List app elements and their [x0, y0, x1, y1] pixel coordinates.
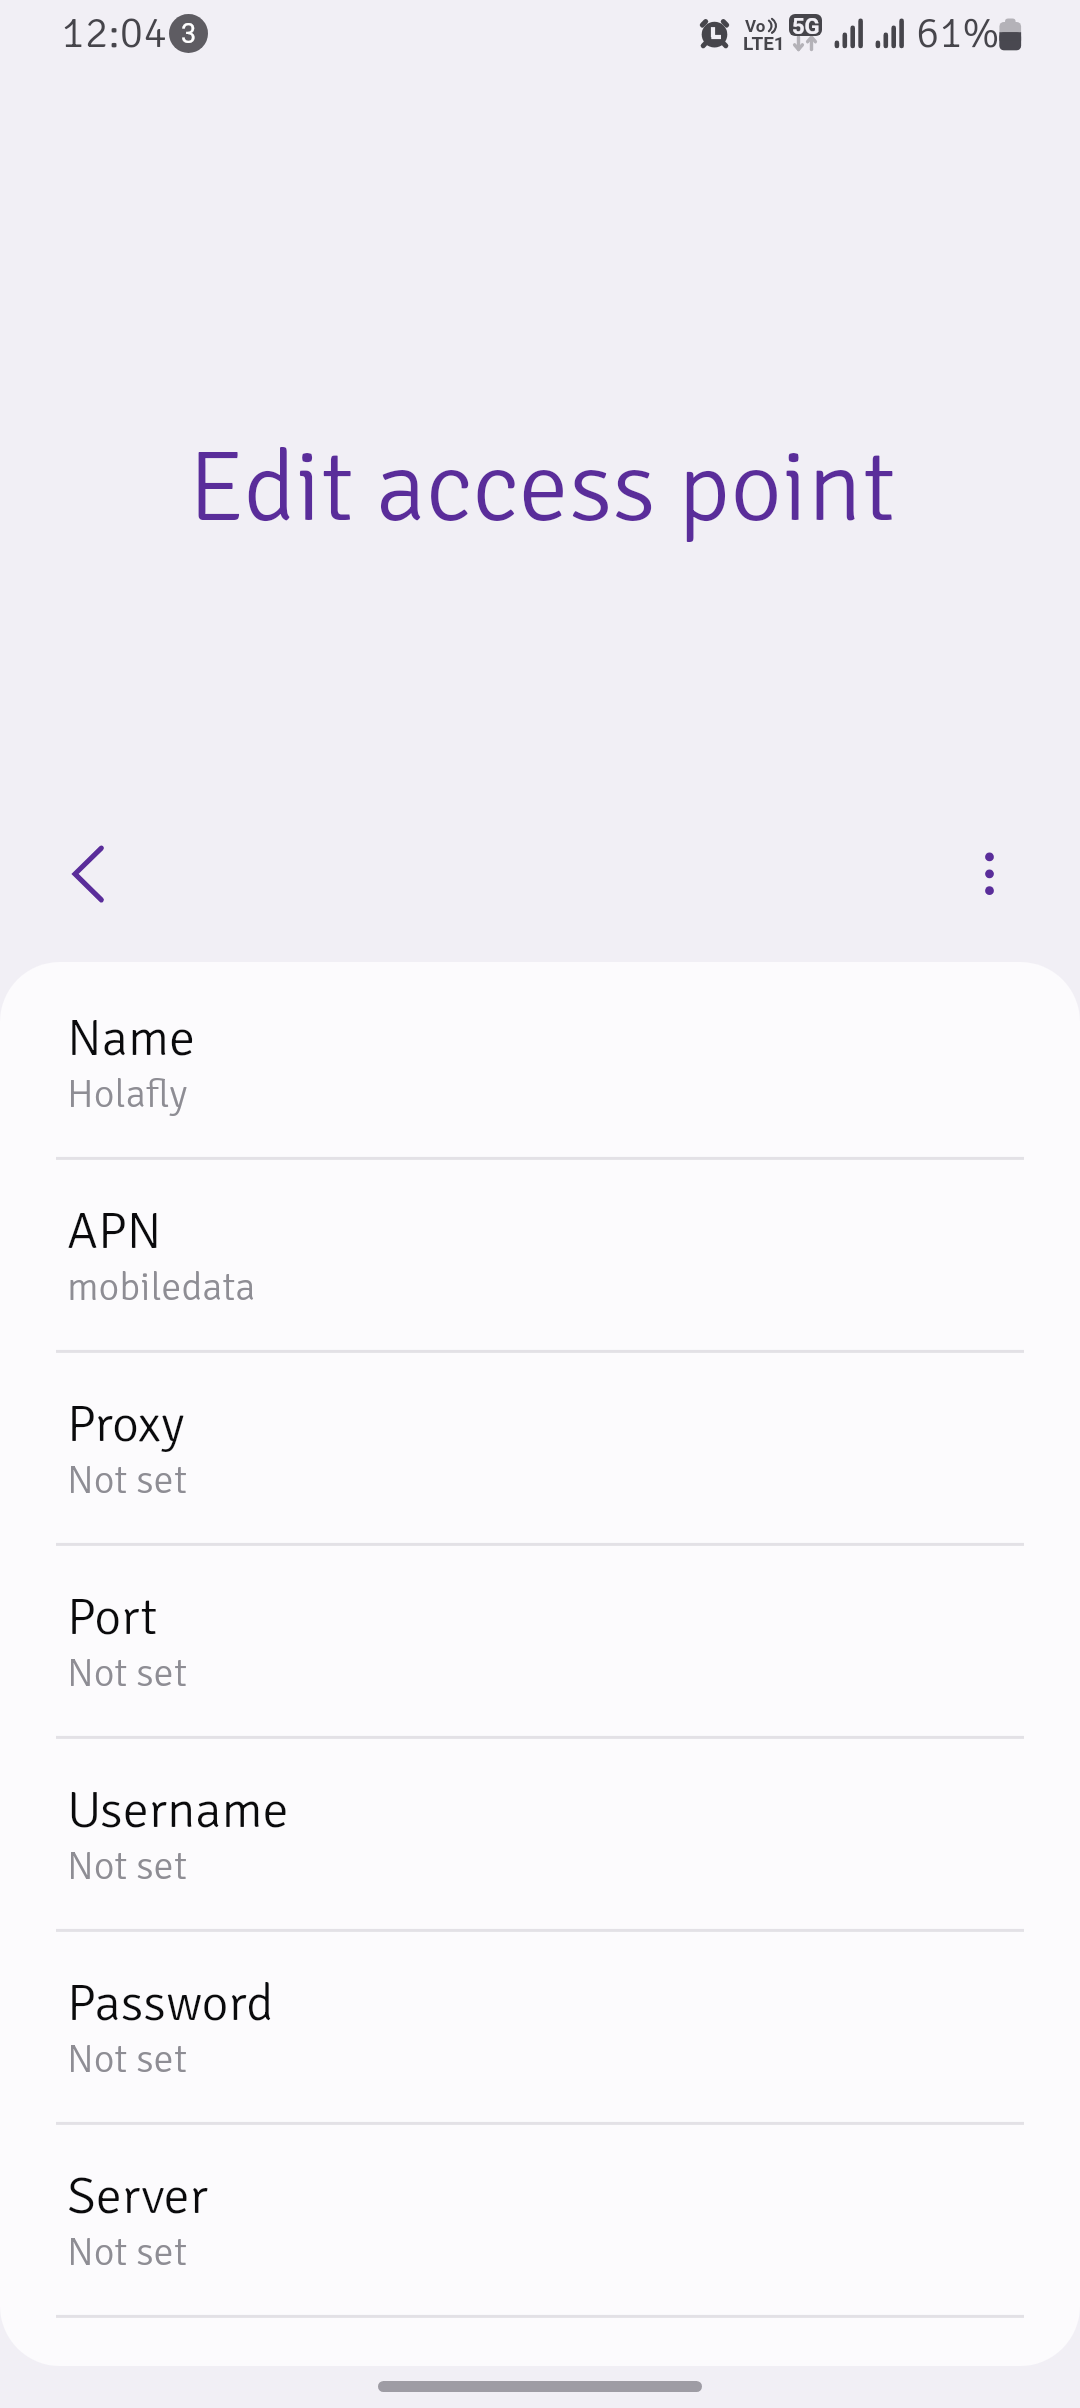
- staticText: 12:04: [61, 6, 168, 60]
- button[interactable]: More options: [932, 818, 1044, 930]
- button[interactable]: APN: [0, 1158, 1080, 1351]
- staticText: Not set: [67, 1455, 188, 1504]
- staticText: Username: [67, 1778, 289, 1842]
- button[interactable]: Username: [0, 1737, 1080, 1930]
- staticText: Proxy: [67, 1392, 185, 1456]
- staticText: Password: [67, 1971, 274, 2035]
- staticText: Not set: [67, 2227, 188, 2276]
- staticText: Holafly: [67, 1069, 188, 1118]
- button[interactable]: Password: [0, 1930, 1080, 2123]
- staticText: Server: [67, 2164, 208, 2228]
- staticText: 5G: [792, 14, 820, 36]
- button[interactable]: Navigate up: [32, 818, 144, 930]
- staticText: 3: [181, 18, 197, 50]
- staticText: Port: [67, 1585, 158, 1649]
- button[interactable]: Server: [0, 2123, 1080, 2316]
- staticText: Not set: [67, 2034, 188, 2083]
- button[interactable]: Name: [0, 965, 1080, 1158]
- staticText: Not set: [67, 1648, 188, 1697]
- staticText: mobiledata: [67, 1262, 256, 1311]
- staticText: 61%: [916, 7, 1000, 60]
- staticText: Name: [67, 1006, 196, 1070]
- staticText: LTE1: [743, 32, 785, 54]
- staticText: Vo: [745, 16, 766, 36]
- staticText: Not set: [67, 1841, 188, 1890]
- button[interactable]: Proxy: [0, 1351, 1080, 1544]
- staticText: Edit access point: [2, 426, 1080, 549]
- button[interactable]: Port: [0, 1544, 1080, 1737]
- staticText: APN: [67, 1199, 162, 1263]
